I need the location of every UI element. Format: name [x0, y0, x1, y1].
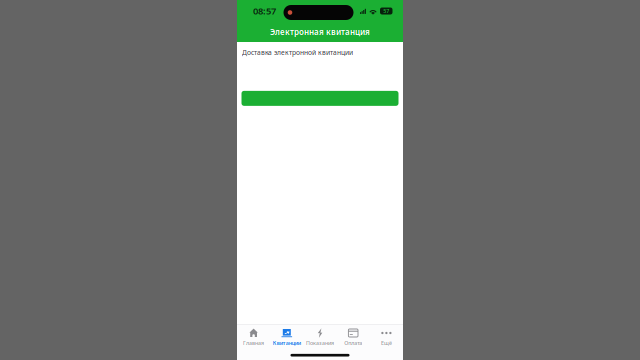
staticText: Доставка электронной квитанции	[242, 48, 353, 57]
staticText: 08:57	[253, 5, 276, 17]
button[interactable]: Подключить электронную квитанцию	[241, 91, 398, 106]
button[interactable]: Показания	[303, 328, 337, 346]
staticText: Главная	[243, 339, 264, 347]
staticText: Квитанции	[273, 339, 301, 347]
staticText: Электронная квитанция	[270, 27, 370, 37]
button[interactable]: Квитанции	[270, 328, 303, 346]
staticText: Оплата	[344, 339, 362, 347]
button[interactable]: Оплата	[337, 328, 370, 346]
staticText: Показания	[306, 339, 334, 347]
button[interactable]: Главная	[237, 328, 270, 346]
button[interactable]: Ещё	[370, 328, 403, 346]
staticText: 57	[383, 7, 389, 15]
staticText: Ещё	[381, 339, 392, 347]
